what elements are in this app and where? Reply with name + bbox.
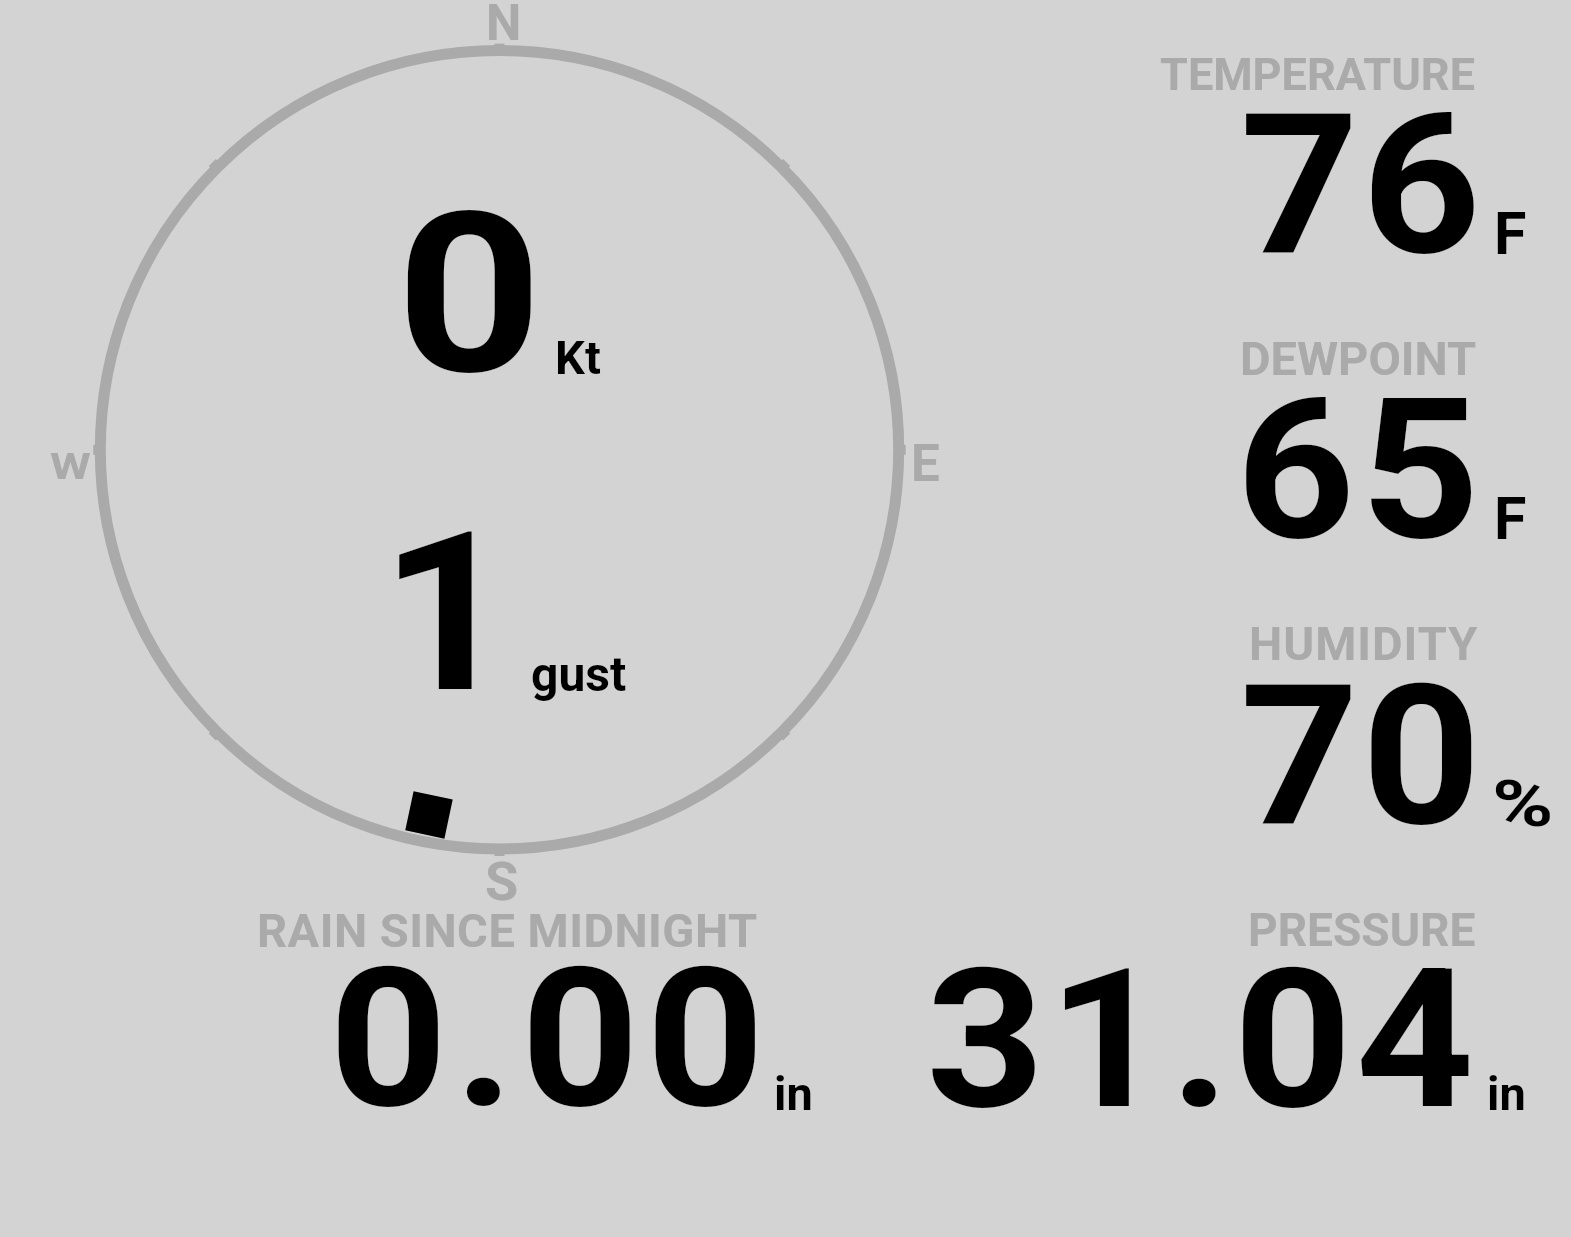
button[interactable]: Rain since midnight 0.00 inches <box>240 895 840 1125</box>
button[interactable]: Dewpoint 65 degrees Fahrenheit <box>1100 325 1560 555</box>
staticText: Kt <box>555 330 601 385</box>
button[interactable]: Humidity 70 percent <box>1100 610 1560 840</box>
staticText: 65 <box>1236 357 1485 584</box>
staticText: 76 <box>1240 72 1484 299</box>
staticText: TEMPERATURE <box>1160 48 1475 101</box>
staticText: 0 <box>396 165 543 425</box>
staticText: W <box>50 445 92 488</box>
staticText: in <box>774 1066 813 1121</box>
staticText: in <box>1487 1066 1526 1121</box>
staticText: RAIN SINCE MIDNIGHT <box>257 903 758 958</box>
staticText: S <box>485 850 519 913</box>
staticText: 31.04 <box>926 927 1478 1153</box>
staticText: DEWPOINT <box>1240 331 1477 386</box>
staticText: HUMIDITY <box>1249 616 1479 671</box>
staticText: % <box>1492 767 1554 842</box>
staticText: 70 <box>1240 643 1484 870</box>
staticText: F <box>1494 199 1527 268</box>
button[interactable]: Wind direction compass, 0 knots, gusting… <box>60 10 940 890</box>
staticText: 1 <box>380 484 515 743</box>
staticText: PRESSURE <box>1248 903 1476 957</box>
staticText: gust <box>531 646 627 702</box>
staticText: F <box>1494 484 1527 553</box>
button[interactable]: Pressure 31.04 inches <box>890 895 1540 1125</box>
staticText: 0.00 <box>329 926 772 1152</box>
staticText: E <box>911 434 940 494</box>
staticText: N <box>486 0 522 53</box>
button[interactable]: Temperature 76 degrees Fahrenheit <box>1100 40 1560 270</box>
